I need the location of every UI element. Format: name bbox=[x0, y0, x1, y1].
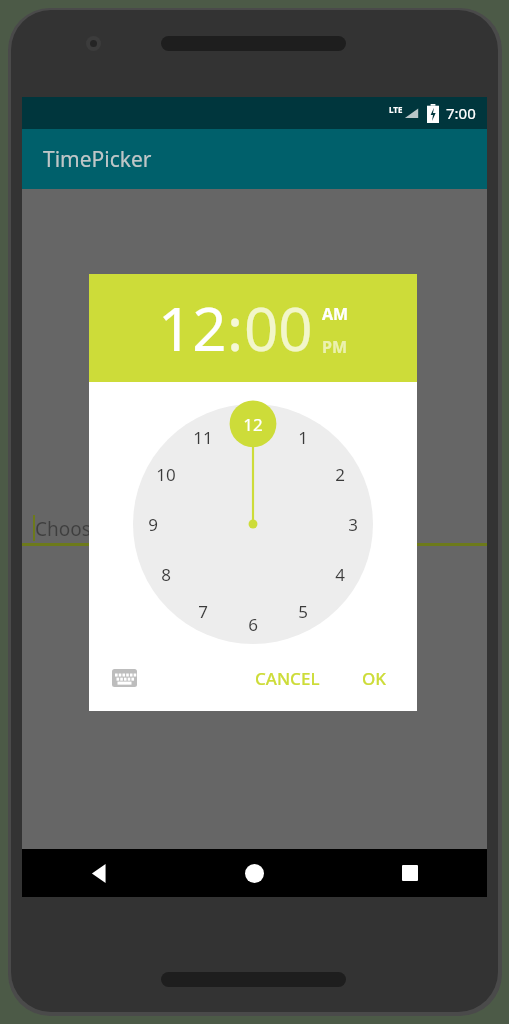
staticText: 10 bbox=[156, 463, 176, 486]
button[interactable]: OK bbox=[350, 659, 399, 698]
button[interactable]: PM bbox=[322, 336, 348, 358]
button[interactable]: 00 bbox=[244, 287, 313, 369]
button[interactable]: 12 bbox=[133, 404, 373, 644]
staticText: 12 bbox=[243, 413, 263, 436]
button[interactable]: Back bbox=[22, 849, 177, 897]
staticText: Choose... bbox=[35, 516, 117, 542]
button[interactable]: Choose... bbox=[22, 500, 487, 546]
button[interactable]: Recent apps bbox=[332, 849, 487, 897]
button[interactable]: Switch to keyboard input bbox=[103, 657, 145, 699]
button[interactable]: Home bbox=[177, 849, 332, 897]
staticText: LTE bbox=[389, 104, 403, 115]
button[interactable]: CANCEL bbox=[243, 659, 332, 698]
staticText: 6 bbox=[248, 613, 258, 636]
staticText: 1 bbox=[298, 426, 308, 449]
staticText: AM bbox=[322, 303, 349, 325]
staticText: 9 bbox=[148, 513, 158, 536]
staticText: 11 bbox=[193, 426, 213, 449]
staticText: 12 bbox=[158, 287, 227, 369]
staticText: TimePicker bbox=[43, 145, 152, 174]
staticText: 7 bbox=[198, 600, 208, 623]
staticText: PM bbox=[322, 336, 348, 358]
staticText: : bbox=[227, 287, 244, 369]
staticText: 7:00 bbox=[446, 103, 476, 123]
button[interactable]: 12 bbox=[158, 287, 227, 369]
staticText: 00 bbox=[244, 287, 313, 369]
staticText: 2 bbox=[335, 463, 345, 486]
staticText: 3 bbox=[348, 513, 358, 536]
staticText: CANCEL bbox=[255, 667, 320, 690]
button[interactable]: AM bbox=[322, 303, 349, 325]
staticText: OK bbox=[362, 667, 387, 690]
staticText: 5 bbox=[298, 600, 308, 623]
staticText: 4 bbox=[335, 563, 345, 586]
staticText: 8 bbox=[161, 563, 171, 586]
